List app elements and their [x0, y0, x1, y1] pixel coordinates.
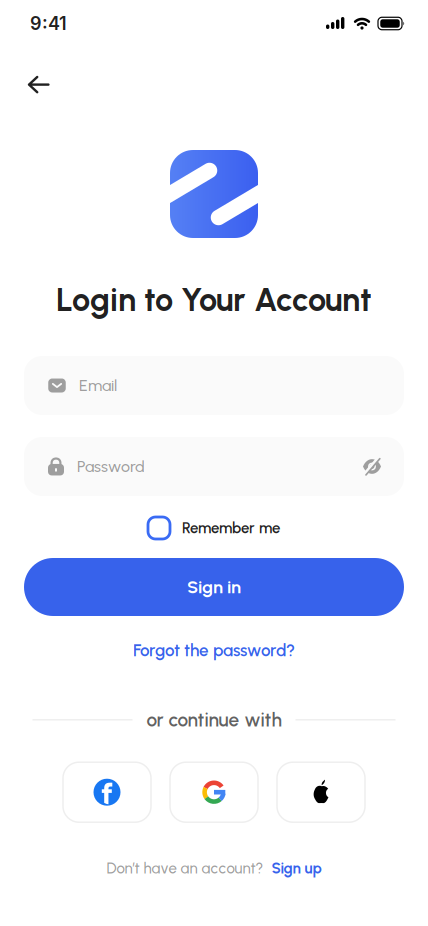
staticText: Sign in	[187, 576, 241, 598]
button[interactable]: Remember me	[148, 517, 280, 539]
button[interactable]: Back	[20, 68, 57, 101]
staticText: Email	[79, 376, 117, 395]
button[interactable]: Continue with Google	[170, 762, 258, 822]
button[interactable]: Sign up	[271, 859, 321, 877]
button[interactable]: Email	[24, 356, 404, 415]
button[interactable]: Sign in	[24, 558, 404, 616]
button[interactable]: Continue with Facebook	[63, 762, 151, 822]
staticText: Remember me	[182, 519, 280, 537]
staticText: or continue with	[146, 708, 281, 731]
button[interactable]: Show password	[362, 458, 404, 474]
button[interactable]: Continue with Apple	[277, 762, 365, 822]
staticText: Don’t have an account?	[106, 859, 263, 877]
button[interactable]: Forgot the password?	[125, 632, 303, 668]
staticText: Sign up	[271, 859, 321, 877]
staticText: Password	[77, 457, 145, 476]
staticText: 9:41	[30, 13, 67, 34]
staticText: Login to Your Account	[56, 280, 372, 319]
button[interactable]: Password	[24, 437, 404, 496]
staticText: Forgot the password?	[133, 640, 295, 660]
